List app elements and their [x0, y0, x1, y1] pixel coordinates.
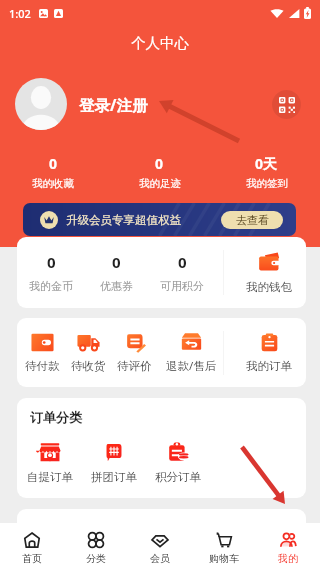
staticText: 我的订单 — [246, 359, 292, 373]
button[interactable]: 会员 — [128, 523, 192, 568]
staticText: 会员 — [150, 552, 170, 565]
button[interactable]: 待评价 — [111, 318, 157, 387]
staticText: 拼团订单 — [91, 470, 137, 484]
staticText: 0 — [47, 252, 56, 272]
button[interactable]: 分类 — [64, 523, 128, 568]
button[interactable]: 自提订单 — [19, 442, 81, 484]
button[interactable]: 扫一扫 — [272, 90, 301, 119]
button[interactable]: 我的订单 — [232, 318, 306, 387]
button[interactable]: 退款/售后 — [161, 318, 221, 387]
staticText: 待收货 — [71, 359, 106, 373]
button[interactable]: 积分订单 — [147, 442, 209, 484]
staticText: 可用积分 — [160, 279, 204, 293]
staticText: 我的签到 — [246, 177, 288, 190]
staticText: 去查看 — [236, 213, 269, 227]
staticText: 首页 — [22, 552, 42, 565]
button[interactable]: 我的钱包 — [232, 237, 306, 308]
staticText: 待付款 — [25, 359, 60, 373]
staticText: 0 — [178, 252, 187, 272]
staticText: 升级会员专享超值权益 — [66, 213, 181, 227]
staticText: 积分订单 — [155, 470, 201, 484]
staticText: 我的收藏 — [32, 177, 74, 190]
staticText: 我的金币 — [29, 279, 73, 293]
button[interactable]: 0 — [85, 237, 147, 308]
staticText: 0 — [112, 252, 121, 272]
button[interactable]: 0 — [106, 154, 213, 190]
staticText: 0 — [155, 154, 164, 173]
button[interactable]: 0 — [21, 237, 81, 308]
staticText: 0天 — [255, 154, 278, 173]
staticText: 1:02 — [9, 6, 31, 21]
button[interactable]: 去查看 — [221, 211, 283, 229]
button[interactable]: 登录/注册 — [79, 94, 148, 115]
button[interactable]: 头像 — [15, 78, 67, 130]
staticText: 购物车 — [209, 552, 239, 565]
button[interactable]: 0天 — [213, 154, 320, 190]
staticText: 个人中心 — [131, 34, 189, 52]
button[interactable]: 拼团订单 — [83, 442, 145, 484]
staticText: 订单分类 — [30, 409, 82, 425]
button[interactable]: 购物车 — [192, 523, 256, 568]
staticText: 待评价 — [117, 359, 152, 373]
button[interactable]: 0 — [151, 237, 213, 308]
staticText: 我的足迹 — [139, 177, 181, 190]
staticText: 分类 — [86, 552, 106, 565]
staticText: 自提订单 — [27, 470, 73, 484]
button[interactable]: 首页 — [0, 523, 64, 568]
button[interactable]: 我的 — [256, 523, 320, 568]
staticText: 退款/售后 — [166, 358, 217, 374]
staticText: 我的 — [278, 552, 298, 565]
staticText: 0 — [49, 154, 58, 173]
staticText: 我的钱包 — [246, 280, 292, 294]
button[interactable]: 待收货 — [65, 318, 111, 387]
button[interactable]: 待付款 — [19, 318, 65, 387]
staticText: 优惠券 — [100, 279, 133, 293]
button[interactable]: 升级会员专享超值权益 — [23, 203, 296, 236]
button[interactable]: 0 — [0, 154, 106, 190]
